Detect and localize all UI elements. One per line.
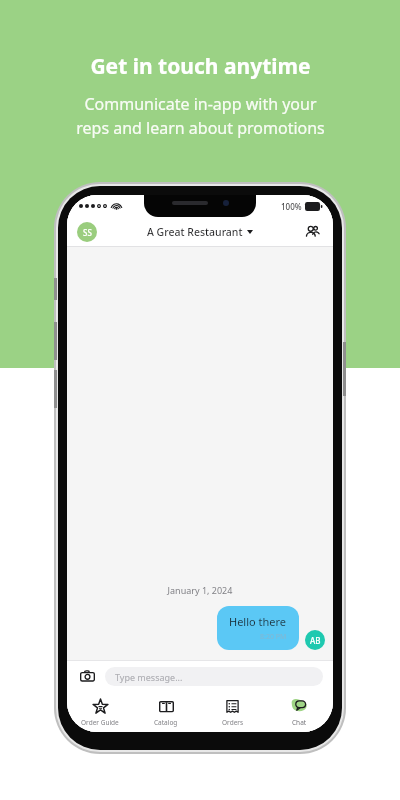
staticText: Orders: [222, 718, 244, 727]
button[interactable]: SS: [77, 222, 97, 242]
staticText: AB: [310, 635, 321, 646]
button[interactable]: Camera: [77, 666, 97, 686]
staticText: Hello there: [229, 614, 287, 629]
staticText: Type message...: [115, 671, 183, 683]
button[interactable]: A Great Restaurant: [143, 221, 257, 243]
button[interactable]: Orders: [199, 692, 266, 732]
button[interactable]: Order Guide: [67, 692, 133, 732]
button[interactable]: Type message...: [105, 667, 323, 686]
staticText: Communicate in-app with your reps and le…: [76, 93, 325, 139]
button[interactable]: Chat: [266, 692, 333, 732]
button[interactable]: Catalog: [133, 692, 199, 732]
staticText: Get in touch anytime: [90, 52, 311, 81]
button[interactable]: Contacts: [301, 220, 325, 244]
staticText: 100%: [281, 201, 302, 212]
staticText: SS: [83, 227, 92, 238]
staticText: Chat: [292, 718, 307, 727]
staticText: January 1, 2024: [67, 584, 333, 596]
button[interactable]: Hello there: [217, 606, 299, 650]
staticText: Order Guide: [81, 718, 119, 727]
staticText: 8:20 PM: [260, 632, 287, 642]
staticText: Catalog: [154, 718, 178, 727]
staticText: A Great Restaurant: [147, 225, 243, 239]
